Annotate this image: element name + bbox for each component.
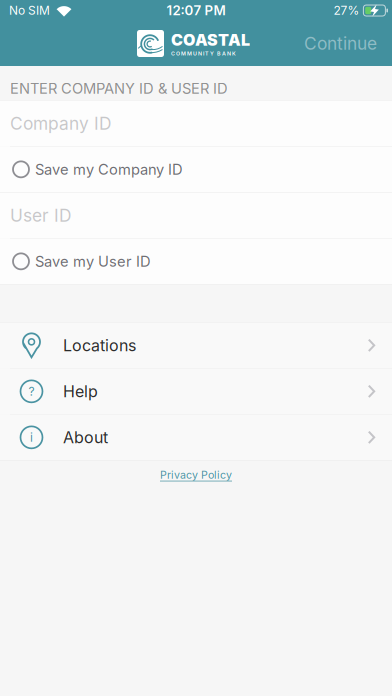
staticText: 12:07 PM: [166, 3, 225, 18]
staticText: Save my Company ID: [35, 161, 183, 178]
staticText: ?: [28, 384, 34, 398]
staticText: i: [30, 430, 33, 444]
staticText: Company ID: [10, 113, 112, 133]
staticText: Locations: [63, 336, 136, 355]
staticText: COASTAL: [171, 30, 250, 49]
button[interactable]: i: [0, 415, 392, 460]
staticText: C O M M U N I T Y B A N K: [171, 50, 236, 57]
staticText: Continue: [304, 33, 377, 54]
button[interactable]: Save my User ID: [0, 239, 392, 284]
button[interactable]: Company ID: [0, 101, 392, 146]
staticText: ENTER COMPANY ID & USER ID: [10, 80, 228, 97]
staticText: User ID: [10, 205, 72, 225]
button[interactable]: Save my Company ID: [0, 147, 392, 192]
button[interactable]: ?: [0, 369, 392, 414]
staticText: Help: [63, 382, 98, 401]
staticText: About: [63, 428, 108, 447]
staticText: No SIM: [9, 3, 50, 18]
button[interactable]: User ID: [0, 193, 392, 238]
button[interactable]: Locations: [0, 323, 392, 368]
staticText: Save my User ID: [35, 253, 151, 270]
button[interactable]: Continue: [304, 33, 392, 54]
staticText: Privacy Policy: [160, 469, 232, 481]
staticText: 27%: [333, 3, 359, 18]
button[interactable]: Privacy Policy: [160, 469, 232, 481]
